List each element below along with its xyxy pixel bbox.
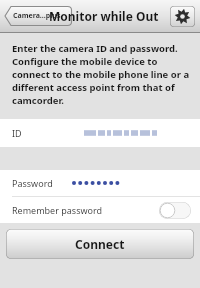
button[interactable]: Settings bbox=[170, 6, 195, 27]
staticText: camcorder. bbox=[12, 94, 64, 107]
button[interactable]: Remember password toggle, off bbox=[159, 202, 191, 219]
staticText: Connect bbox=[75, 236, 125, 252]
button[interactable]: Remember password bbox=[0, 197, 200, 223]
staticText: Monitor while Out bbox=[49, 8, 159, 24]
staticText: connect to the mobile phone line or a bbox=[12, 68, 190, 81]
button[interactable]: Camera ID field bbox=[0, 119, 200, 147]
button[interactable]: Back to Camera plus bbox=[4, 6, 72, 26]
button[interactable]: Connect bbox=[6, 229, 194, 259]
staticText: Password bbox=[12, 177, 53, 189]
button[interactable]: Password field bbox=[0, 170, 200, 196]
staticText: Remember password bbox=[12, 204, 103, 216]
staticText: Configure the mobile device to bbox=[12, 55, 158, 68]
staticText: different access point from that of bbox=[12, 81, 175, 94]
staticText: Camera…plus bbox=[13, 11, 61, 21]
staticText: Enter the camera ID and password. bbox=[12, 42, 178, 55]
staticText: ID bbox=[12, 127, 22, 139]
